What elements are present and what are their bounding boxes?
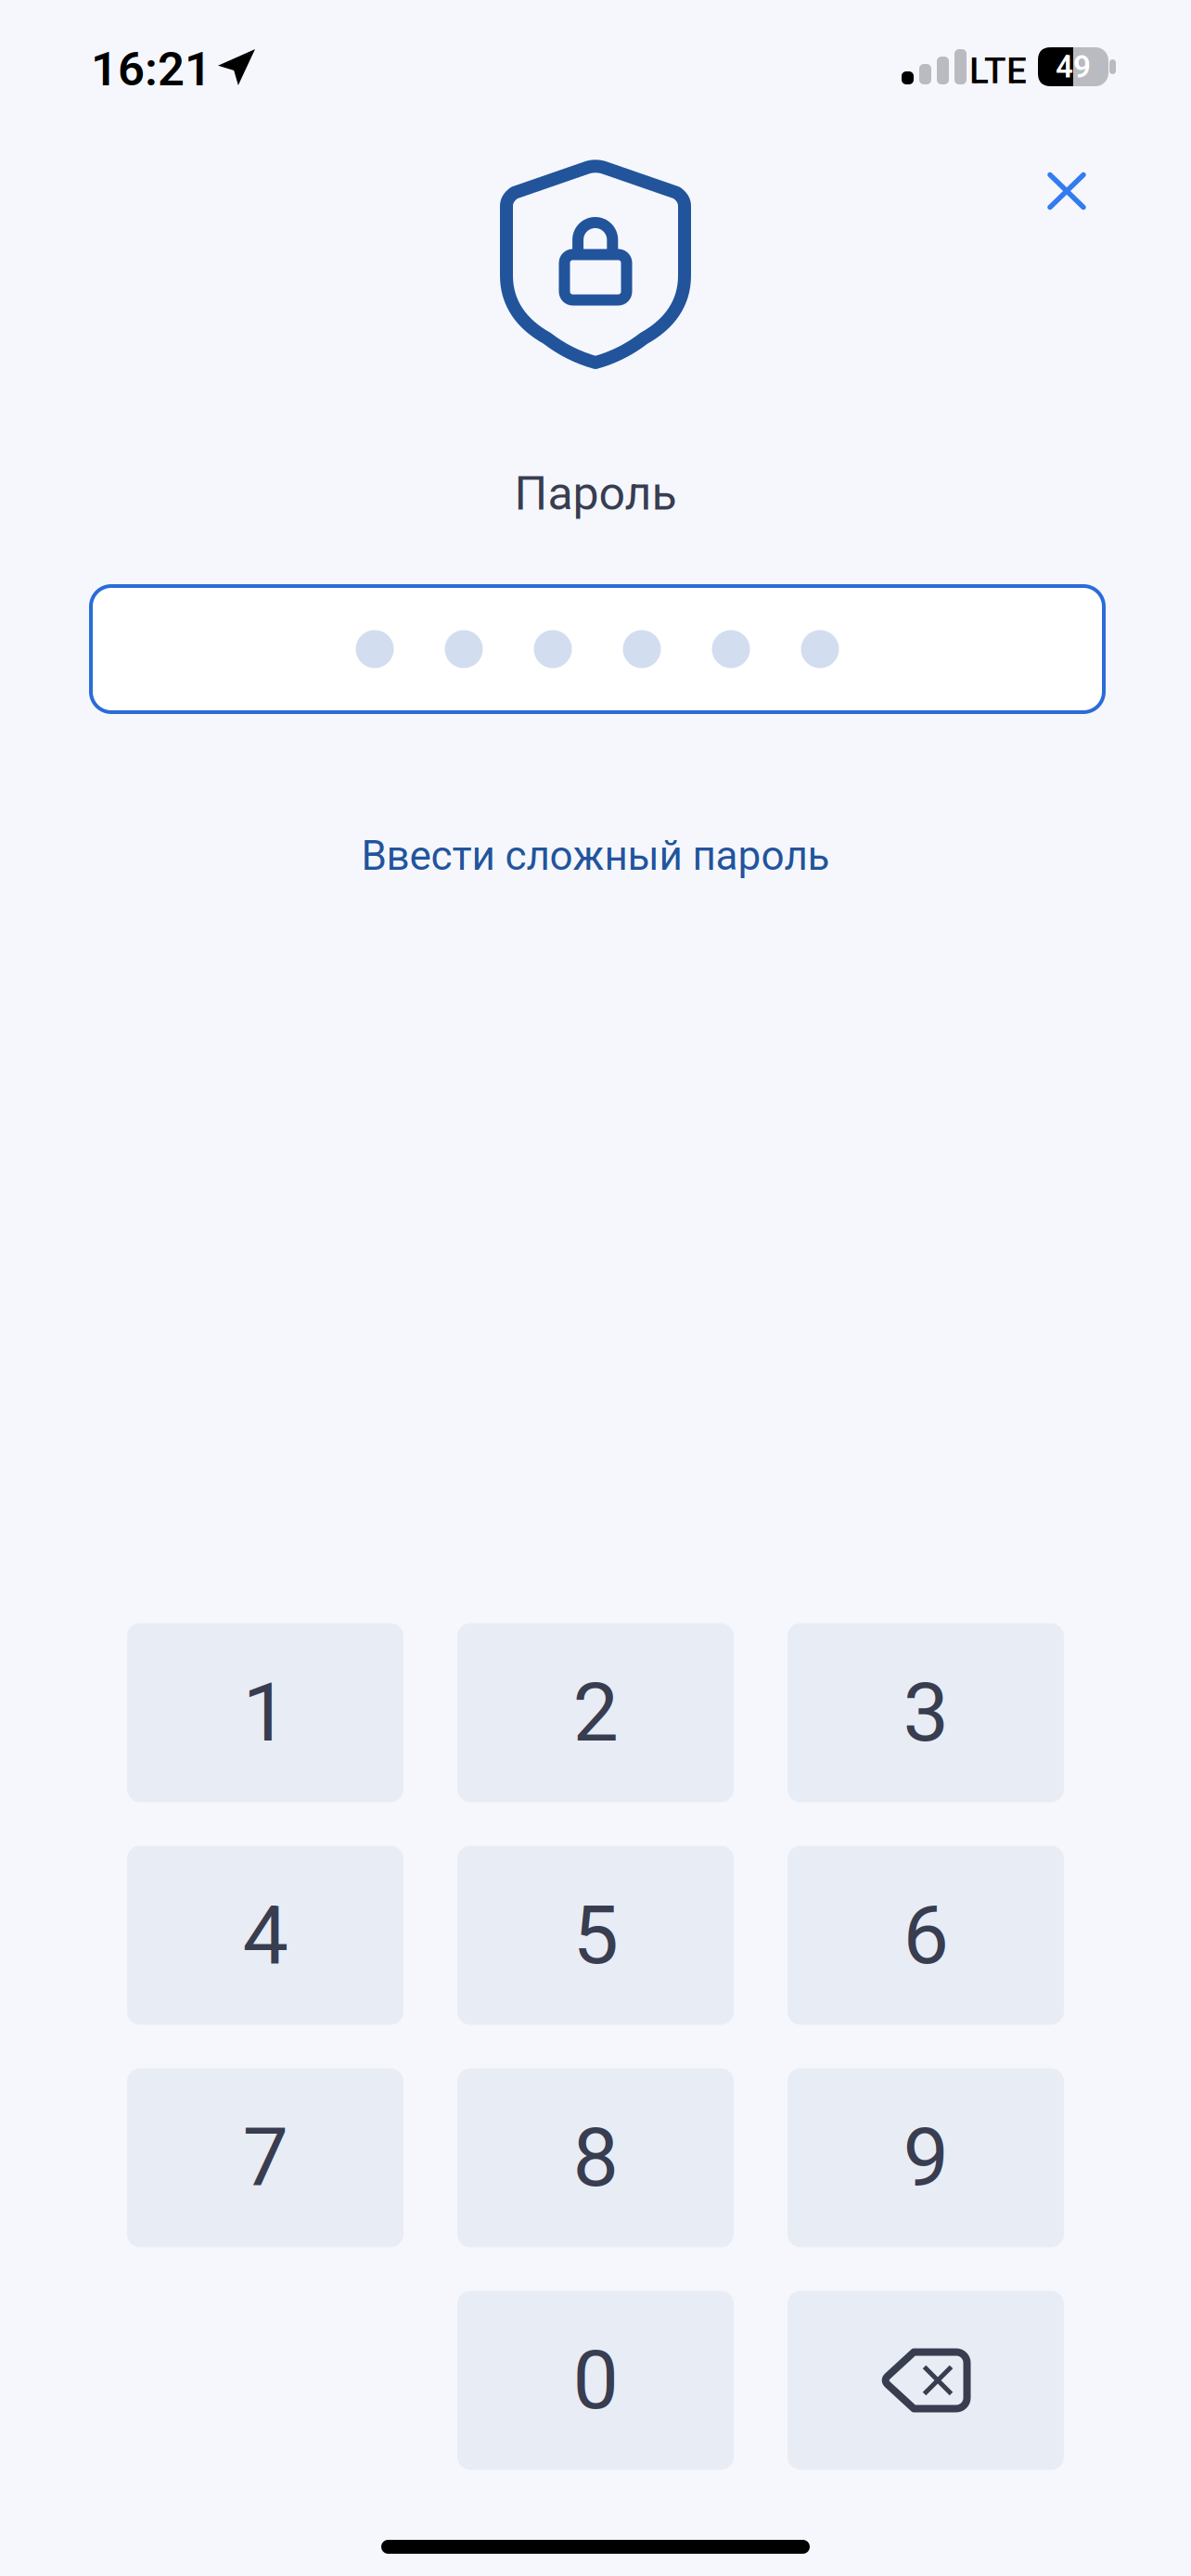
button[interactable]: 4 [127,1846,403,2025]
button[interactable]: Ввести сложный пароль [308,819,883,893]
button[interactable]: Delete [788,2291,1064,2470]
button[interactable]: 2 [457,1623,734,1802]
button[interactable]: 3 [788,1623,1064,1802]
staticText: 6 [903,1887,948,1983]
button[interactable]: 6 [788,1846,1064,2025]
staticText: 9 [903,2110,948,2206]
staticText: 3 [903,1665,948,1760]
staticText: 49 [1056,49,1091,85]
button[interactable]: 7 [127,2068,403,2247]
button[interactable]: 0 [457,2291,734,2470]
staticText: 8 [573,2110,618,2206]
staticText: 4 [243,1887,288,1983]
staticText: 2 [573,1665,618,1760]
button[interactable]: 8 [457,2068,734,2247]
button[interactable]: 1 [127,1623,403,1802]
staticText: 7 [243,2110,288,2206]
staticText: 16:21 [91,42,211,97]
staticText: Ввести сложный пароль [361,832,830,880]
staticText: 0 [573,2332,618,2428]
button[interactable]: 5 [457,1846,734,2025]
button[interactable]: Close [1016,140,1118,242]
staticText: 1 [243,1665,288,1760]
button[interactable]: 9 [788,2068,1064,2247]
staticText: 5 [573,1887,618,1983]
staticText: LTE [969,50,1027,92]
staticText: Пароль [514,466,677,521]
